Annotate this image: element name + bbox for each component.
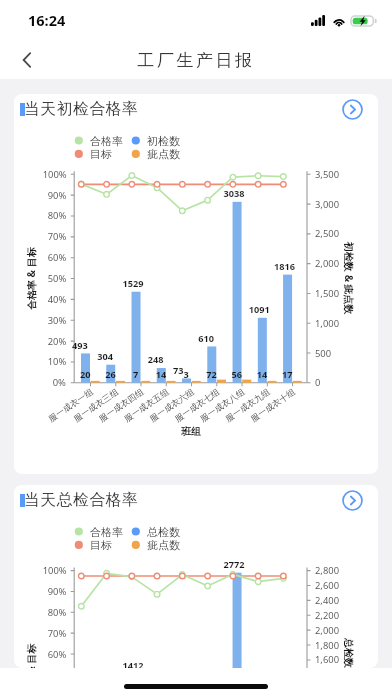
staticText: 16:24: [28, 10, 66, 30]
button[interactable]: Open details: [342, 490, 363, 511]
staticText: 当天总检合格率: [24, 490, 139, 510]
staticText: 当天初检合格率: [24, 99, 139, 119]
button[interactable]: 当天初检合格率: [14, 94, 378, 474]
staticText: 工厂生产日报: [0, 50, 392, 71]
button[interactable]: Back: [8, 41, 46, 79]
button[interactable]: Open details: [342, 99, 363, 120]
button[interactable]: 当天总检合格率: [14, 485, 378, 668]
